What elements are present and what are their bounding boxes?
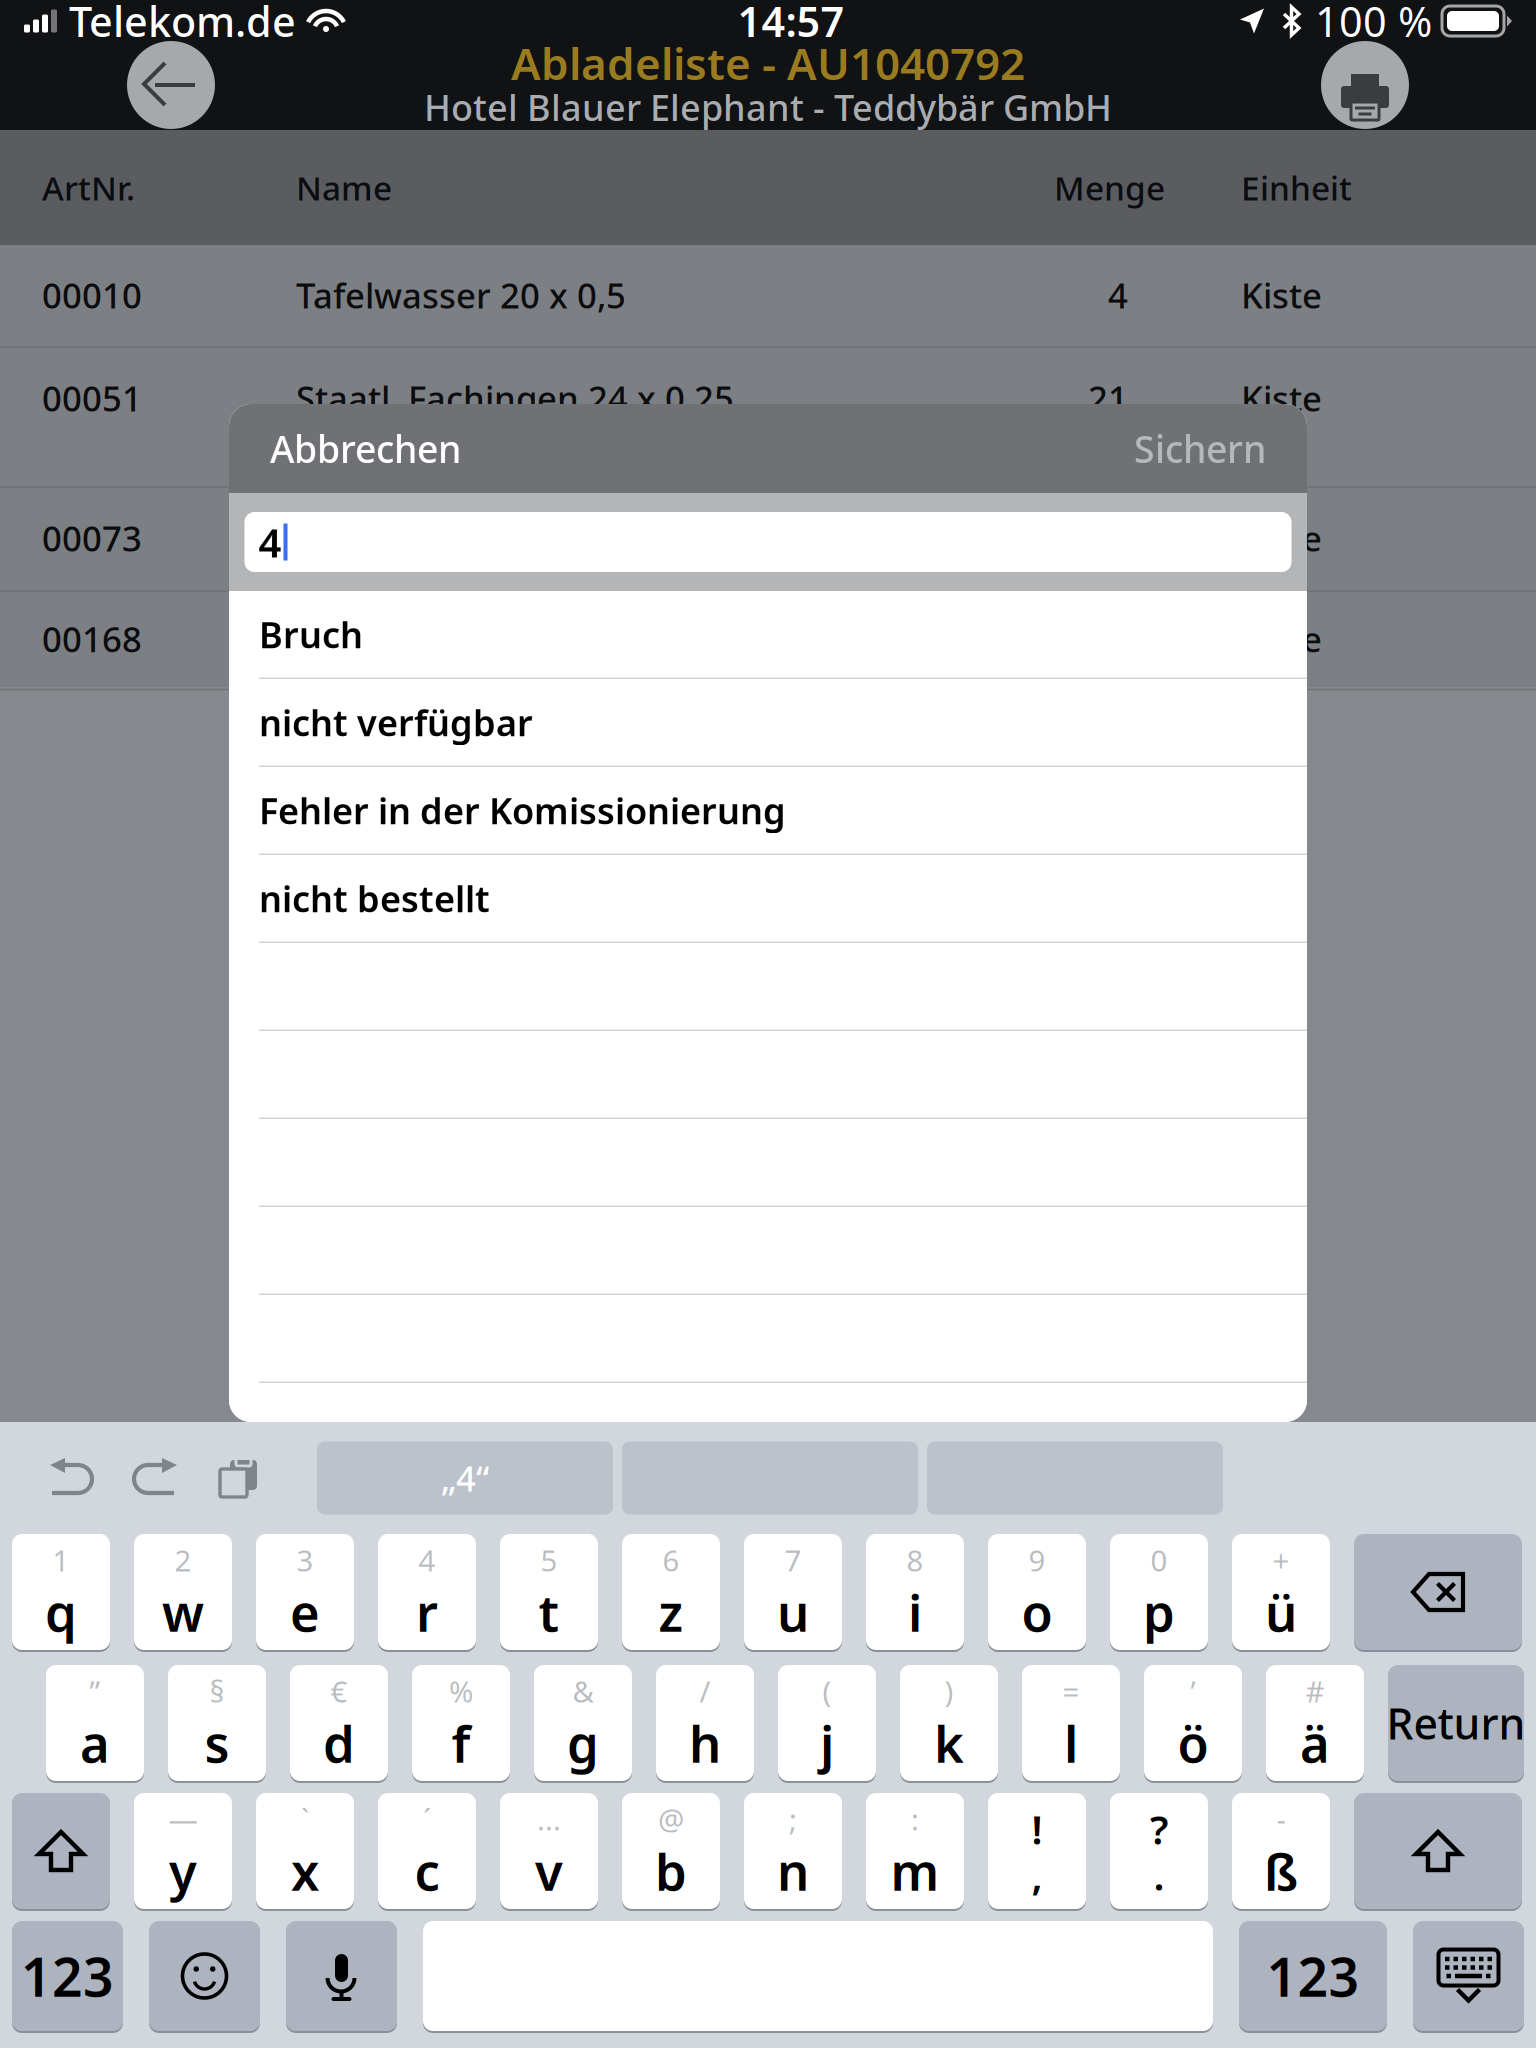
button[interactable]: Emoji <box>149 1921 260 2031</box>
button[interactable]: Rückgängig <box>36 1442 107 1514</box>
staticText: 00010 <box>42 272 142 318</box>
button[interactable]: Diktat <box>286 1921 397 2031</box>
button[interactable]: 1 <box>12 1534 110 1650</box>
button[interactable]: Bruch <box>229 591 1307 679</box>
staticText: 8 <box>906 1540 923 1579</box>
button[interactable]: Zurück <box>127 41 215 129</box>
staticText: ´ <box>423 1799 431 1838</box>
staticText: i <box>908 1578 922 1646</box>
button[interactable]: 3 <box>256 1534 354 1650</box>
button[interactable]: 5 <box>500 1534 598 1650</box>
staticText: Kiste <box>1241 272 1322 318</box>
button[interactable]: 00010 <box>0 245 1536 348</box>
staticText: e <box>290 1578 320 1646</box>
button[interactable]: 00073 <box>0 488 1536 592</box>
button[interactable]: @ <box>622 1793 720 1909</box>
button[interactable]: € <box>290 1665 388 1781</box>
staticText: nicht bestellt <box>259 874 490 922</box>
button[interactable]: 9 <box>988 1534 1086 1650</box>
button[interactable]: Drucken <box>1321 41 1409 129</box>
button[interactable]: % <box>412 1665 510 1781</box>
staticText: „4“ <box>441 1455 489 1501</box>
button[interactable]: Return <box>1388 1665 1524 1781</box>
button[interactable]: : <box>866 1793 964 1909</box>
button[interactable]: 6 <box>622 1534 720 1650</box>
staticText: Kiste <box>1241 515 1322 561</box>
staticText: Sichern <box>1134 424 1266 473</box>
staticText: d <box>323 1709 355 1777</box>
button[interactable]: ( <box>778 1665 876 1781</box>
button[interactable]: 123 <box>1239 1921 1387 2031</box>
button[interactable]: 7 <box>744 1534 842 1650</box>
staticText: p <box>1143 1578 1175 1646</box>
staticText: 00051 <box>42 375 142 421</box>
button[interactable]: — <box>134 1793 232 1909</box>
staticText: Fehler in der Komissionierung <box>259 786 786 834</box>
staticText: & <box>572 1671 593 1710</box>
staticText: Name <box>296 165 392 210</box>
button[interactable]: 0 <box>1110 1534 1208 1650</box>
button[interactable]: Einsetzen <box>206 1442 272 1514</box>
button[interactable]: Abbrechen <box>264 410 467 487</box>
button[interactable]: ! <box>988 1793 1086 1909</box>
button[interactable]: nicht bestellt <box>229 855 1307 943</box>
staticText: Kiste <box>1241 616 1322 662</box>
staticText: 0 <box>1150 1540 1167 1579</box>
button[interactable]: ... <box>500 1793 598 1909</box>
staticText: g <box>567 1709 599 1777</box>
button[interactable]: ´ <box>378 1793 476 1909</box>
staticText: 4 <box>258 515 281 568</box>
button[interactable]: Fehler in der Komissionierung <box>229 767 1307 855</box>
button[interactable]: 2 <box>134 1534 232 1650</box>
staticText: 00073 <box>42 515 142 561</box>
staticText: — <box>168 1799 197 1838</box>
button[interactable]: Sichern <box>1128 410 1272 487</box>
button[interactable]: 8 <box>866 1534 964 1650</box>
button[interactable]: ” <box>46 1665 144 1781</box>
button[interactable]: 123 <box>12 1921 123 2031</box>
staticText: @ <box>658 1799 684 1838</box>
staticText: ” <box>89 1671 100 1710</box>
staticText: m <box>890 1837 939 1905</box>
staticText: . <box>1153 1848 1164 1901</box>
staticText: k <box>934 1709 964 1777</box>
button[interactable]: Umschalt rechts <box>1354 1793 1522 1909</box>
staticText: ... <box>537 1799 561 1838</box>
staticText: f <box>451 1709 470 1777</box>
button[interactable]: ` <box>256 1793 354 1909</box>
button[interactable]: & <box>534 1665 632 1781</box>
staticText: ArtNr. <box>42 165 135 210</box>
button[interactable]: Tastatur ausblenden <box>1413 1921 1524 2031</box>
button[interactable]: ’ <box>1144 1665 1242 1781</box>
button[interactable]: - <box>1232 1793 1330 1909</box>
button[interactable]: / <box>656 1665 754 1781</box>
staticText: Hotel Blauer Elephant - Teddybär GmbH <box>424 83 1112 131</box>
staticText: l <box>1064 1709 1078 1777</box>
staticText: 6 <box>662 1540 679 1579</box>
button[interactable]: Löschen <box>1354 1534 1522 1650</box>
staticText: h <box>689 1709 721 1777</box>
button[interactable]: Umschalt <box>12 1793 110 1909</box>
button[interactable]: 00168 <box>0 592 1536 687</box>
button[interactable]: 4 <box>378 1534 476 1650</box>
staticText: ü <box>1265 1578 1297 1646</box>
button[interactable]: + <box>1232 1534 1330 1650</box>
staticText: s <box>204 1709 229 1777</box>
button[interactable]: ; <box>744 1793 842 1909</box>
button[interactable]: nicht verfügbar <box>229 679 1307 767</box>
staticText: 21 <box>1088 375 1128 421</box>
staticText: y <box>169 1837 197 1905</box>
button[interactable]: ? <box>1110 1793 1208 1909</box>
button[interactable]: „4“ <box>317 1441 613 1514</box>
button[interactable]: 00051 <box>0 348 1536 488</box>
button[interactable]: = <box>1022 1665 1120 1781</box>
button[interactable]: Wiederholen <box>120 1442 191 1514</box>
button[interactable]: § <box>168 1665 266 1781</box>
button[interactable]: # <box>1266 1665 1364 1781</box>
button[interactable]: ) <box>900 1665 998 1781</box>
